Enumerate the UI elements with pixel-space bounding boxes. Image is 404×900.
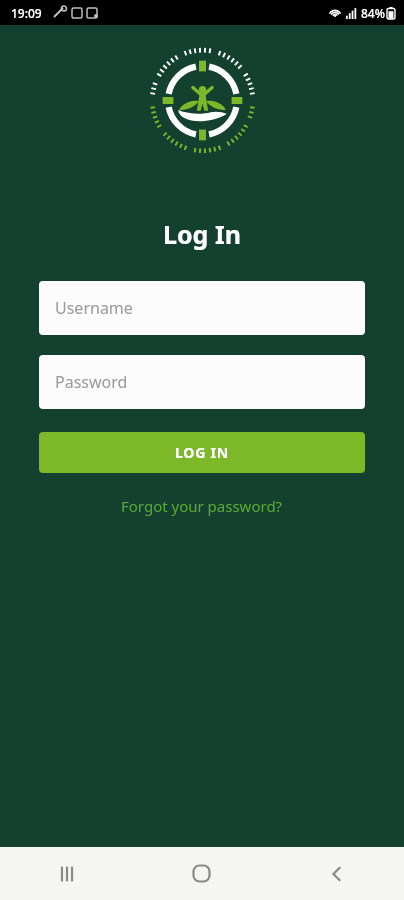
- staticText: Log In: [163, 217, 241, 251]
- staticText: 19:09: [11, 5, 42, 21]
- button[interactable]: Password: [39, 355, 365, 409]
- staticText: LOG IN: [175, 443, 230, 462]
- staticText: Username: [55, 297, 133, 319]
- button[interactable]: Forgot your password?: [109, 492, 295, 520]
- button[interactable]: Username: [39, 281, 365, 335]
- staticText: 84%: [361, 5, 385, 21]
- button[interactable]: Recent apps: [0, 847, 134, 900]
- button[interactable]: Back: [269, 847, 404, 900]
- staticText: Password: [55, 371, 128, 393]
- button[interactable]: Home: [134, 847, 269, 900]
- staticText: Forgot your password?: [121, 496, 283, 516]
- button[interactable]: LOG IN: [39, 432, 365, 473]
